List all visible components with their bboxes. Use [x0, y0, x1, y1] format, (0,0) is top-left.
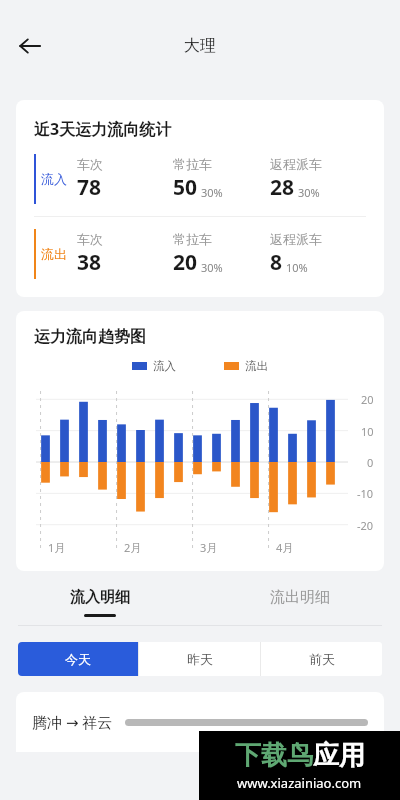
- staticText: 常拉车: [173, 156, 212, 172]
- staticText: 流出明细: [270, 588, 330, 607]
- staticText: 78: [77, 173, 102, 202]
- staticText: 应用: [313, 739, 365, 772]
- staticText: 3月: [200, 540, 218, 555]
- button[interactable]: 昨天: [139, 642, 260, 676]
- staticText: 10: [361, 424, 374, 439]
- staticText: 流入: [153, 359, 176, 373]
- staticText: 流出: [41, 246, 67, 262]
- staticText: 20: [361, 392, 374, 407]
- staticText: www.xiazainiao.com: [237, 774, 362, 792]
- staticText: 30%: [201, 260, 223, 275]
- button[interactable]: 今天: [18, 642, 138, 676]
- staticText: -10: [357, 486, 374, 501]
- button[interactable]: 流出明细: [200, 579, 400, 625]
- staticText: 30%: [201, 185, 223, 200]
- staticText: 1月: [48, 540, 66, 555]
- staticText: 8: [270, 248, 283, 277]
- staticText: 腾冲 → 祥云: [32, 712, 113, 732]
- staticText: 20: [173, 248, 198, 277]
- staticText: 0: [367, 455, 374, 470]
- staticText: 车次: [77, 231, 103, 247]
- staticText: 返程派车: [270, 231, 322, 247]
- button[interactable]: 前天: [261, 642, 382, 676]
- staticText: 下载鸟: [235, 739, 313, 772]
- staticText: 50: [173, 173, 198, 202]
- button[interactable]: 流入明细: [0, 579, 200, 625]
- staticText: 今天: [65, 651, 91, 667]
- button[interactable]: 腾冲 → 祥云: [16, 692, 384, 752]
- staticText: 流出: [245, 359, 268, 373]
- staticText: 大理: [184, 36, 216, 56]
- staticText: -20: [357, 518, 374, 533]
- staticText: 返程派车: [270, 156, 322, 172]
- staticText: 30%: [298, 185, 320, 200]
- staticText: 流入: [41, 171, 67, 187]
- staticText: 4月: [276, 540, 294, 555]
- staticText: 常拉车: [173, 231, 212, 247]
- staticText: 运力流向趋势图: [34, 327, 146, 347]
- staticText: 28: [270, 173, 295, 202]
- staticText: 近3天运力流向统计: [34, 118, 172, 140]
- staticText: 2月: [124, 540, 142, 555]
- button[interactable]: Back: [6, 22, 54, 70]
- staticText: 10%: [286, 260, 308, 275]
- staticText: 车次: [77, 156, 103, 172]
- staticText: 流入明细: [70, 588, 130, 607]
- staticText: 38: [77, 248, 102, 277]
- staticText: 昨天: [187, 651, 213, 667]
- staticText: 前天: [309, 651, 335, 667]
